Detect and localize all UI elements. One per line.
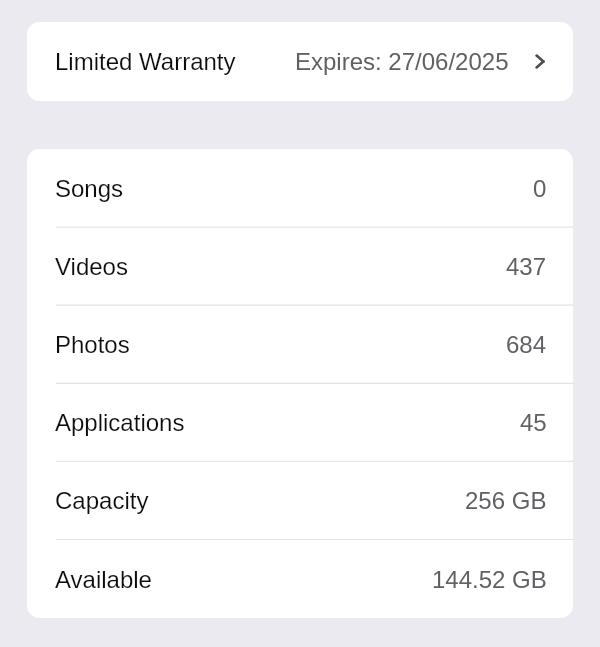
staticText: Songs xyxy=(55,175,124,202)
staticText: Capacity xyxy=(55,487,149,514)
staticText: Available xyxy=(55,566,152,593)
staticText: 437 xyxy=(506,253,547,280)
staticText: Expires: 27/06/2025 xyxy=(295,48,509,75)
staticText: 45 xyxy=(520,409,547,436)
staticText: Limited Warranty xyxy=(55,48,236,75)
staticText: Videos xyxy=(55,253,128,280)
staticText: 144.52 GB xyxy=(432,566,547,593)
button[interactable]: Capacity xyxy=(27,461,573,539)
button[interactable]: Available xyxy=(27,540,573,618)
button[interactable]: Applications xyxy=(27,383,573,461)
staticText: Photos xyxy=(55,331,130,358)
button[interactable]: Songs xyxy=(27,149,573,227)
other: Open Limited Warranty details xyxy=(535,54,545,69)
staticText: 0 xyxy=(533,175,547,202)
staticText: Applications xyxy=(55,409,185,436)
button[interactable]: Videos xyxy=(27,227,573,305)
button[interactable]: Limited Warranty xyxy=(27,22,573,101)
staticText: 256 GB xyxy=(465,487,547,514)
staticText: 684 xyxy=(506,331,547,358)
button[interactable]: Photos xyxy=(27,305,573,383)
